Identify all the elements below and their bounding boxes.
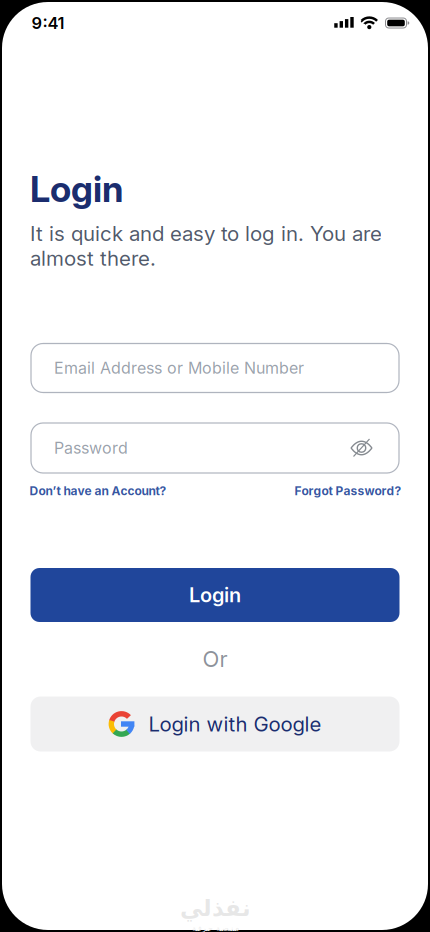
staticText: نفذلي xyxy=(179,895,250,921)
staticText: Login xyxy=(189,583,241,607)
staticText: Don’t have an Account? xyxy=(29,484,166,498)
staticText: Email Address or Mobile Number xyxy=(54,358,304,378)
staticText: مـنـصـة حـرفـة xyxy=(191,923,238,932)
button[interactable]: Don’t have an Account? xyxy=(29,484,166,498)
staticText: Login xyxy=(30,167,123,211)
staticText: 9:41 xyxy=(31,13,64,33)
button[interactable]: Forgot Password? xyxy=(294,484,401,498)
button[interactable]: Email Address or Mobile Number xyxy=(31,343,399,392)
staticText: Or xyxy=(202,646,227,672)
button[interactable]: Password xyxy=(31,423,399,473)
staticText: Forgot Password? xyxy=(294,484,401,498)
staticText: almost there. xyxy=(30,246,156,271)
staticText: It is quick and easy to log in. You are xyxy=(30,221,382,246)
staticText: Password xyxy=(54,438,128,458)
staticText: Login with Google xyxy=(148,712,321,736)
button[interactable]: Login with Google xyxy=(30,696,399,751)
button[interactable]: Login xyxy=(30,568,399,622)
